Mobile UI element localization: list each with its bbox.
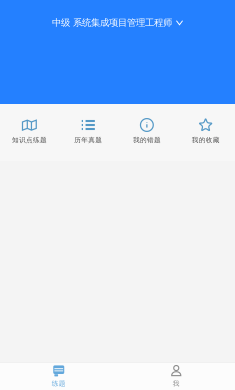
- staticText: 练题: [52, 379, 66, 388]
- staticText: 知识点练题: [12, 136, 47, 144]
- button[interactable]: 我的收藏: [176, 104, 235, 161]
- staticText: 我的错题: [133, 136, 161, 144]
- staticText: 我的收藏: [192, 136, 220, 144]
- staticText: 我: [173, 379, 180, 388]
- button[interactable]: 历年真题: [59, 104, 118, 161]
- staticText: 中级 系统集成项目管理工程师: [52, 17, 172, 28]
- button[interactable]: 知识点练题: [0, 104, 59, 161]
- button[interactable]: 我: [117, 363, 235, 390]
- button[interactable]: 中级 系统集成项目管理工程师: [46, 13, 189, 32]
- staticText: 历年真题: [74, 136, 102, 144]
- button[interactable]: 练题: [0, 363, 117, 390]
- button[interactable]: 我的错题: [117, 104, 176, 161]
